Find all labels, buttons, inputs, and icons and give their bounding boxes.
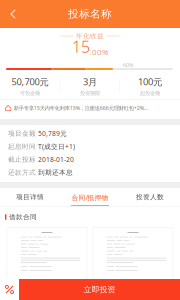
button[interactable]: 合同/抵押物 (60, 188, 120, 206)
staticText: 截止投标 (8, 155, 36, 164)
staticText: 年化收益 (76, 32, 104, 40)
button[interactable]: Contract document (93, 227, 173, 279)
staticText: 新手专享15天内年化利率15%，注册送666元理财红包+2%… (14, 104, 148, 112)
button[interactable]: 立即投资 (19, 279, 180, 300)
staticText: 50,700元 (11, 75, 48, 88)
staticText: 可投金额 (20, 90, 40, 96)
staticText: 15 (72, 36, 90, 57)
staticText: 起息时间 (8, 142, 36, 151)
staticText: .00% (90, 46, 108, 57)
staticText: 3月 (83, 75, 97, 88)
staticText: 100元 (138, 75, 162, 88)
staticText: 项目金额 (8, 129, 36, 138)
staticText: 60% (123, 61, 133, 69)
staticText: 借款合同 (9, 213, 37, 221)
staticText: 项目详情 (16, 193, 44, 201)
staticText: T(成交日+1) (38, 142, 75, 151)
staticText: 立即投资 (83, 285, 115, 294)
staticText: 50,789元 (38, 129, 67, 138)
button[interactable]: Rate details (0, 279, 19, 300)
staticText: 还款方式 (8, 168, 36, 177)
staticText: 合同/抵押物 (71, 193, 108, 202)
button[interactable]: Contract document (7, 227, 87, 279)
staticText: 2018-01-20 (38, 155, 74, 164)
button[interactable]: 投资人数 (120, 188, 180, 206)
button[interactable]: 项目详情 (0, 188, 60, 206)
staticText: 投标名称 (68, 7, 112, 20)
staticText: 投资人数 (136, 193, 164, 201)
staticText: 起投金额 (140, 90, 160, 96)
button[interactable]: Back (0, 0, 26, 28)
staticText: 投资期限 (80, 90, 100, 96)
staticText: 到期还本息 (38, 168, 73, 177)
